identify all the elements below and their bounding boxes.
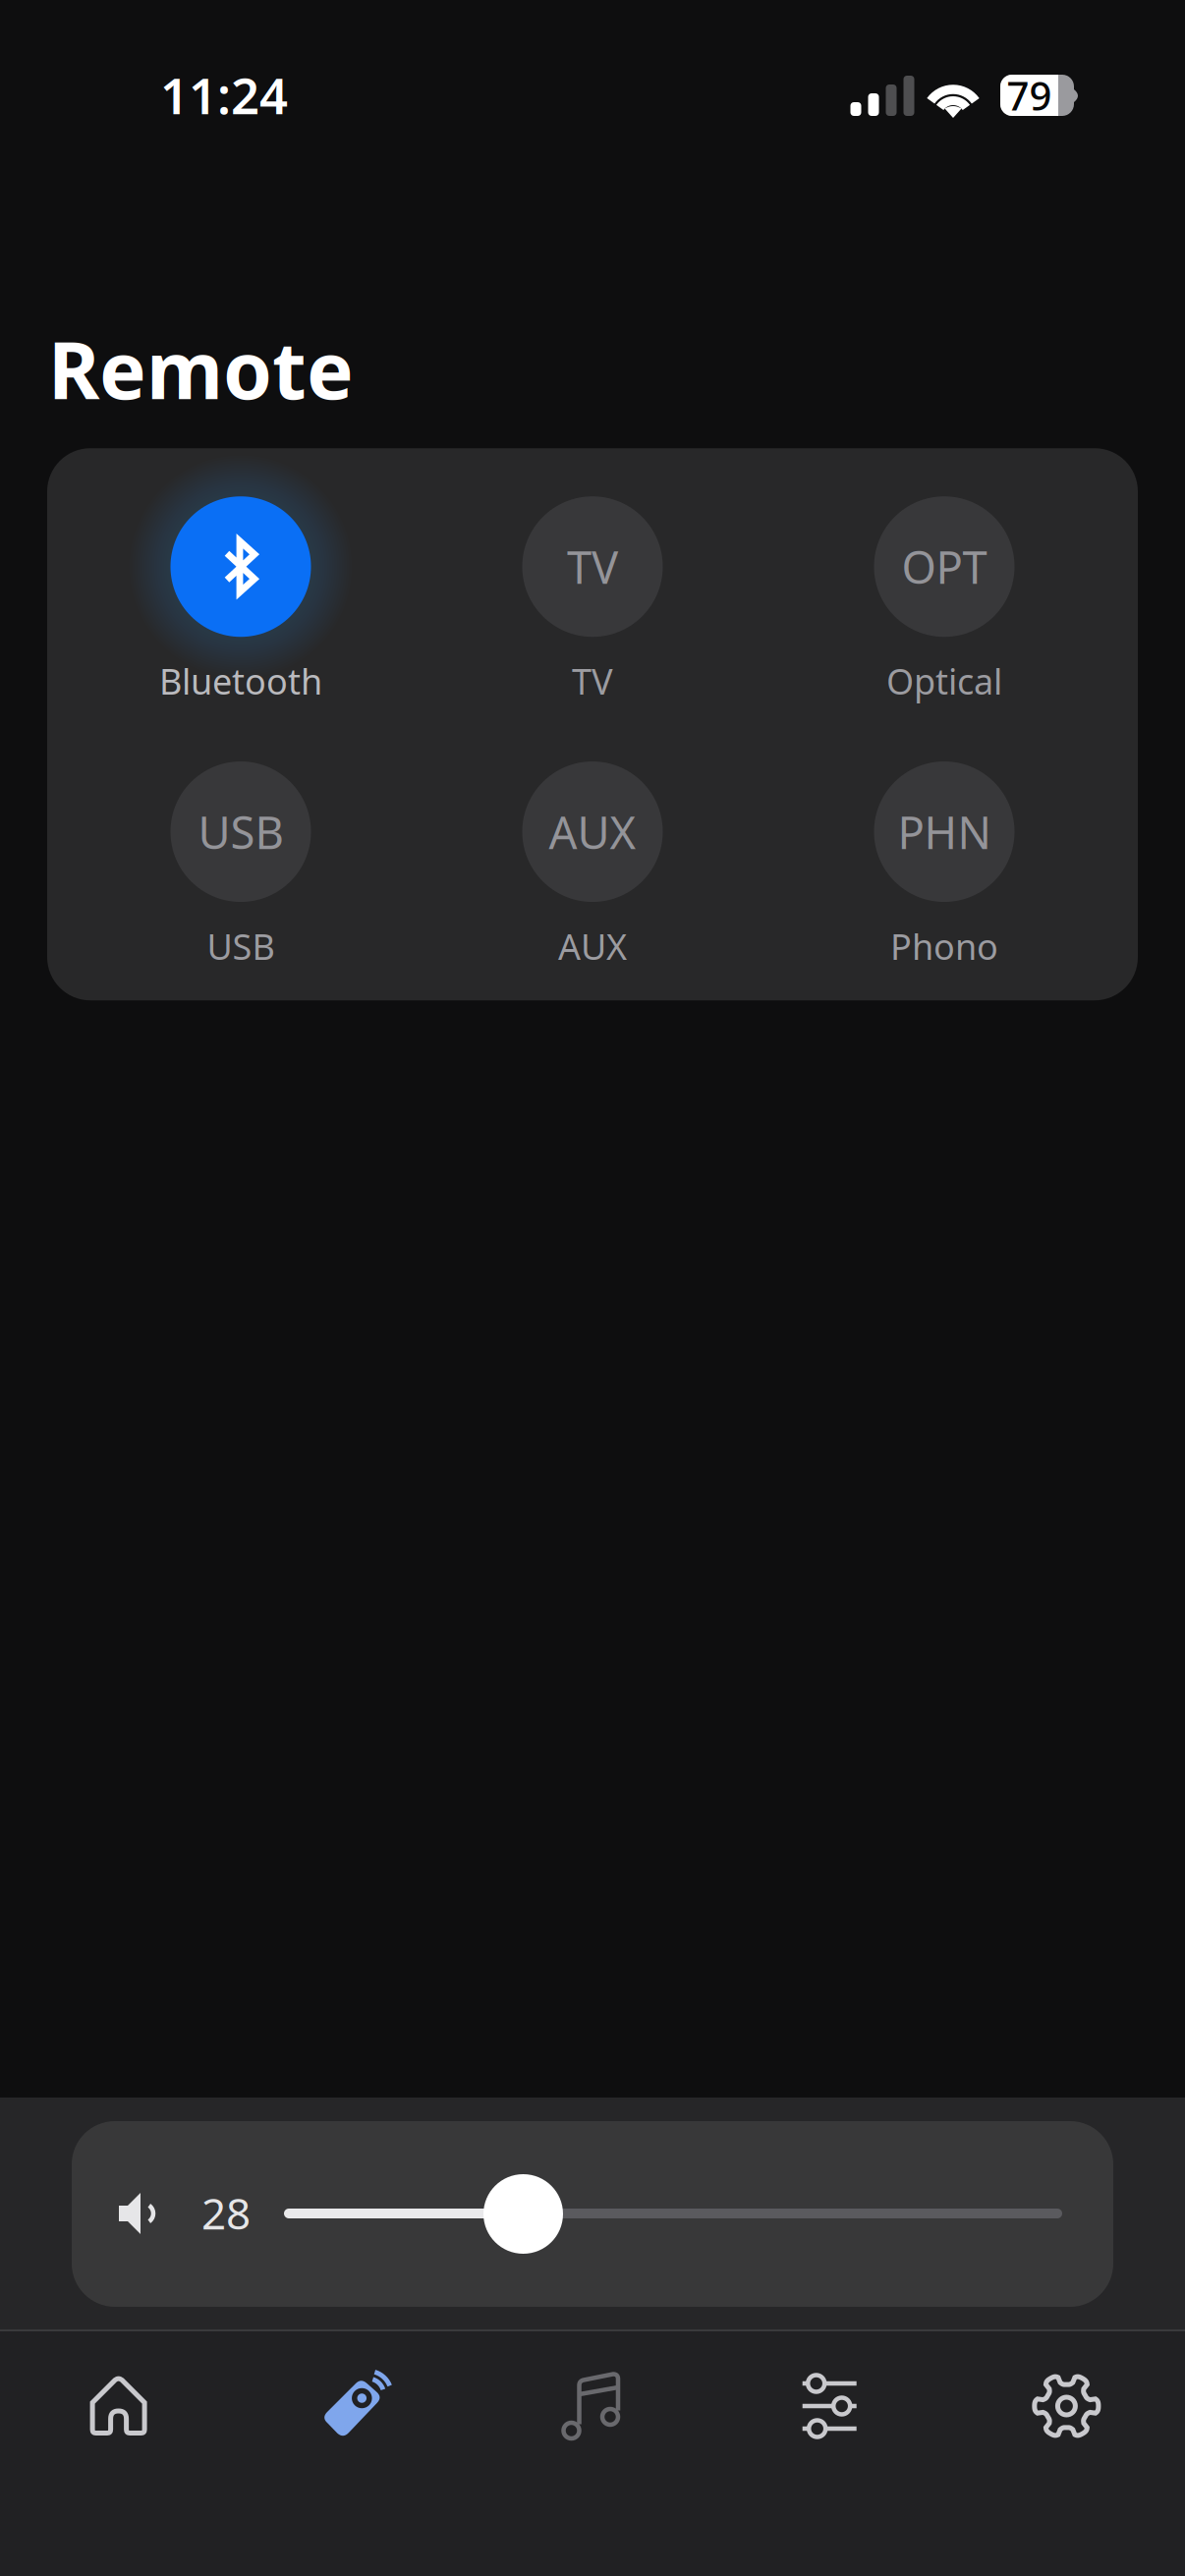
button[interactable]: TV [417,496,768,704]
button[interactable]: Equalizer [711,2369,948,2443]
button[interactable]: Music [474,2369,711,2443]
staticText: Bluetooth [159,657,322,704]
staticText: TV [572,657,613,704]
staticText: 11:24 [160,62,288,128]
button[interactable]: Bluetooth [65,496,417,704]
staticText: USB [198,802,283,861]
button[interactable]: USB [65,761,417,969]
staticText: Phono [890,923,998,969]
button[interactable]: AUX [417,761,768,969]
staticText: TV [567,537,618,596]
staticText: PHN [898,802,991,861]
staticText: OPT [902,537,987,596]
button[interactable]: Settings [948,2369,1185,2443]
staticText: 28 [201,2184,251,2241]
staticText: AUX [549,802,636,861]
staticText: AUX [558,923,627,969]
staticText: Optical [886,657,1002,704]
button[interactable]: Home [0,2369,237,2443]
button[interactable]: Remote [237,2369,474,2443]
staticText: USB [207,923,275,969]
staticText: 79 [1007,69,1052,121]
button[interactable]: OPT [768,496,1120,704]
button[interactable]: PHN [768,761,1120,969]
staticText: Remote [48,316,354,421]
